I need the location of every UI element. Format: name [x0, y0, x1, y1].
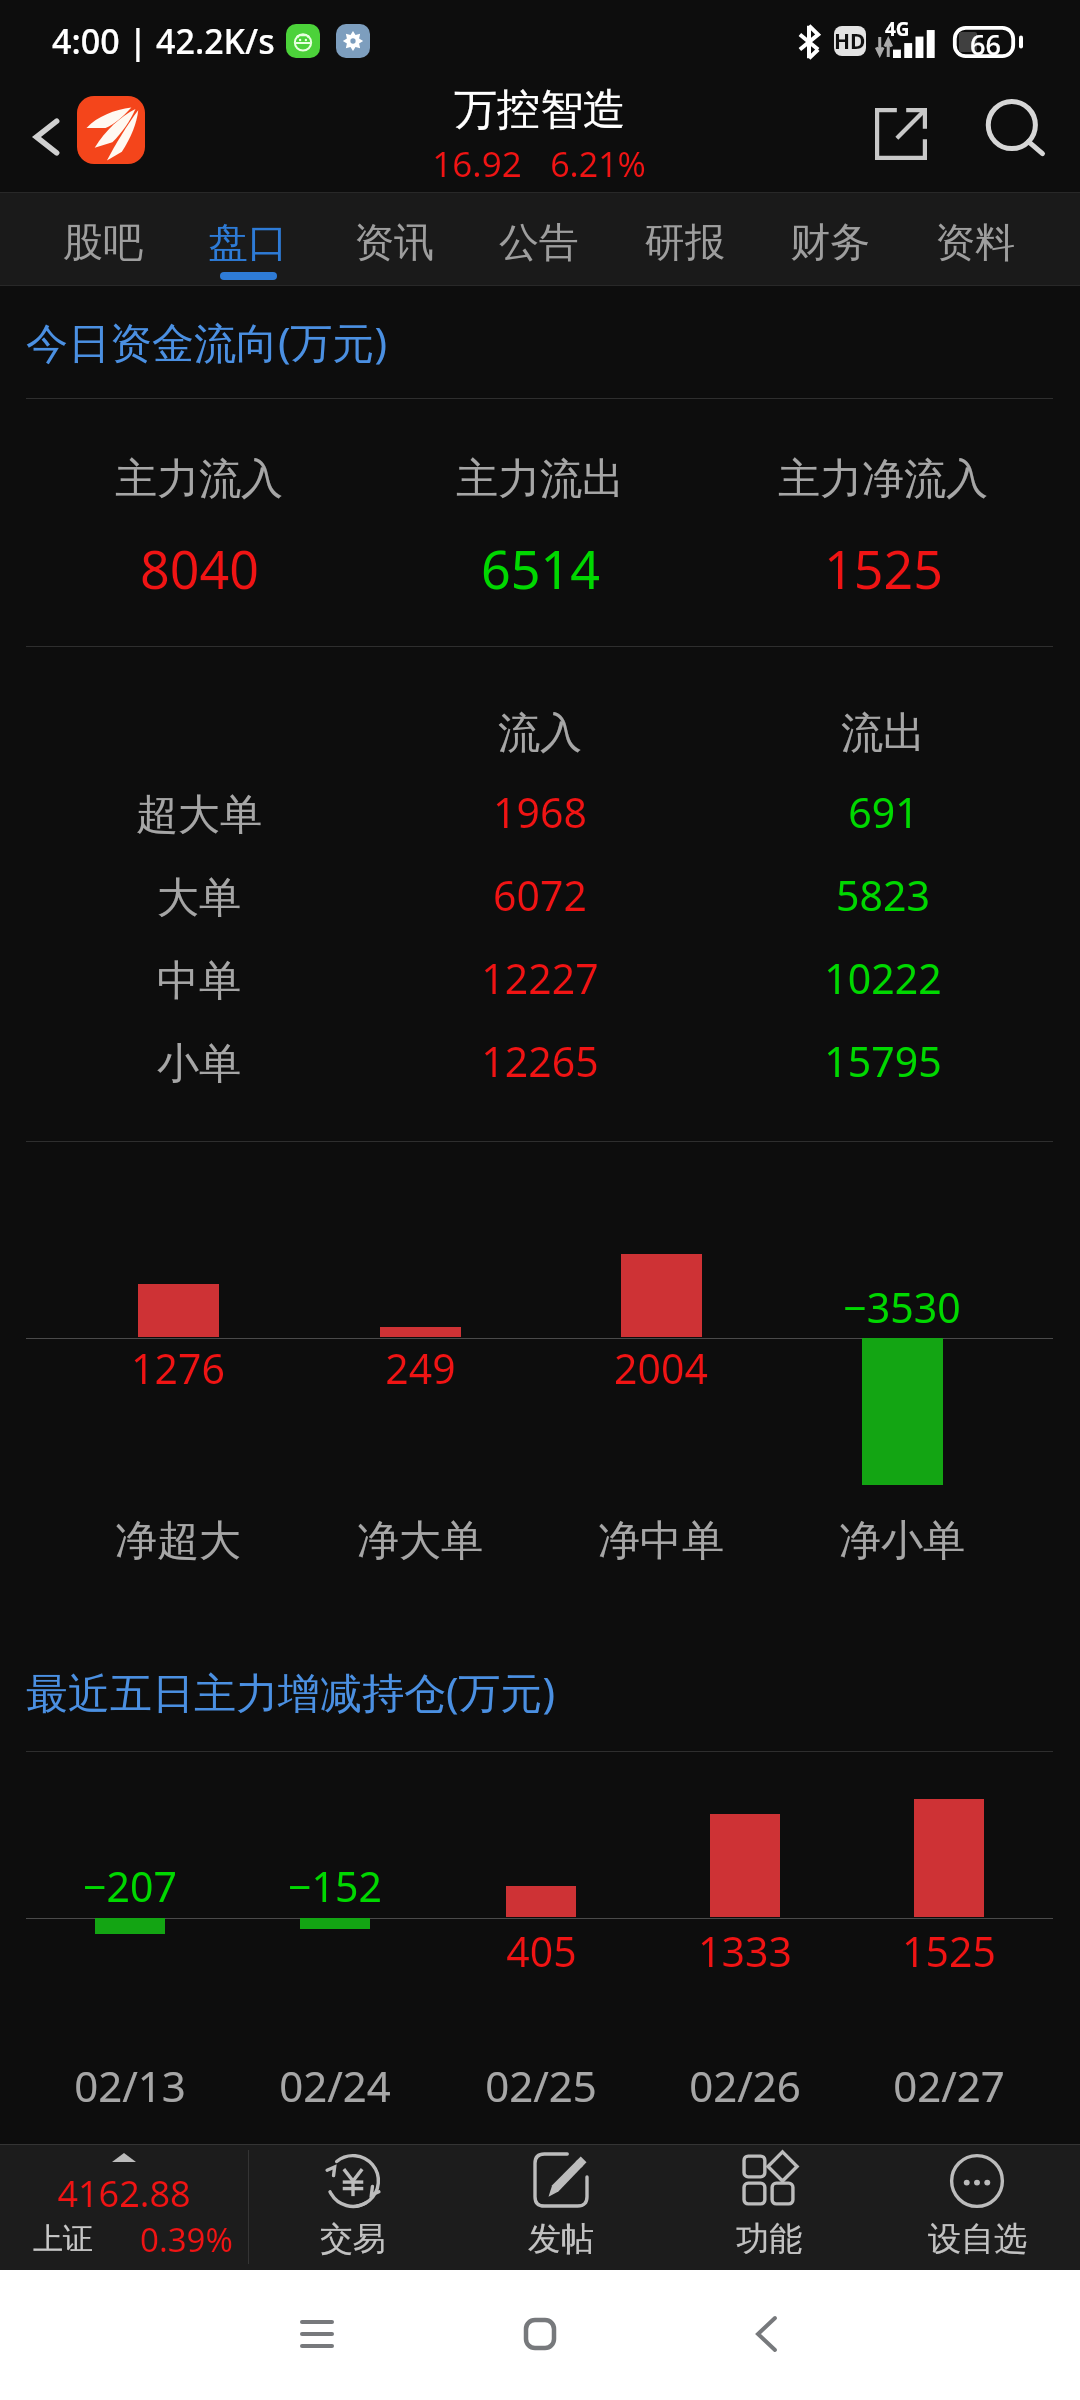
staticText: −3530	[843, 1279, 961, 1335]
staticText: 1525	[902, 1923, 996, 1979]
staticText: 66	[970, 26, 1001, 58]
staticText: 资讯	[354, 217, 434, 267]
staticText: 4162.88	[57, 2169, 191, 2218]
staticText: 流入	[498, 707, 582, 760]
staticText: 6072	[493, 867, 587, 923]
staticText: 中单	[157, 955, 241, 1008]
staticText: 2004	[614, 1340, 708, 1396]
staticText: 小单	[157, 1038, 241, 1091]
button[interactable]: 研报	[613, 192, 757, 286]
staticText: 今日资金流向(万元)	[26, 313, 388, 370]
staticText: 净小单	[839, 1515, 965, 1568]
staticText: 4:00 | 42.2K/s	[52, 18, 275, 64]
staticText: 大单	[157, 872, 241, 925]
staticText: 1276	[131, 1340, 225, 1396]
staticText: 02/27	[893, 2057, 1005, 2114]
button[interactable]: 设自选	[873, 2144, 1080, 2270]
staticText: 发帖	[528, 2218, 594, 2260]
button[interactable]: 4162.88	[0, 2144, 248, 2270]
staticText: 691	[848, 784, 919, 840]
staticText: 资料	[935, 217, 1015, 267]
button[interactable]: 发帖	[457, 2144, 665, 2270]
staticText: 1333	[698, 1923, 792, 1979]
staticText: 6514	[481, 533, 600, 604]
staticText: 万控智造	[454, 83, 626, 137]
staticText: 功能	[736, 2218, 802, 2260]
staticText: 4G	[885, 16, 910, 42]
button[interactable]: Home	[480, 2274, 600, 2394]
staticText: 财务	[790, 217, 870, 267]
staticText: −207	[83, 1858, 177, 1914]
staticText: 净中单	[598, 1515, 724, 1568]
staticText: 盘口	[208, 217, 288, 267]
staticText: 02/13	[74, 2057, 186, 2114]
button[interactable]: Back	[706, 2274, 826, 2394]
button[interactable]: 交易	[249, 2144, 457, 2270]
staticText: 02/24	[279, 2057, 391, 2114]
staticText: 净大单	[357, 1515, 483, 1568]
button[interactable]: Eastmoney	[77, 96, 145, 164]
staticText: 12265	[481, 1033, 599, 1089]
staticText: 5823	[836, 867, 930, 923]
staticText: 设自选	[928, 2218, 1027, 2260]
staticText: 02/25	[485, 2057, 597, 2114]
staticText: 405	[506, 1923, 577, 1979]
staticText: 主力净流入	[778, 453, 988, 506]
staticText: 超大单	[136, 789, 262, 842]
staticText: 公告	[499, 217, 579, 267]
staticText: 交易	[320, 2218, 386, 2260]
staticText: 流出	[841, 707, 925, 760]
button[interactable]: Recents	[257, 2274, 377, 2394]
staticText: 最近五日主力增减持仓(万元)	[26, 1663, 556, 1720]
staticText: 1525	[824, 533, 943, 604]
staticText: 10222	[824, 950, 942, 1006]
button[interactable]: 功能	[665, 2144, 873, 2270]
staticText: 02/26	[689, 2057, 801, 2114]
button[interactable]: Search	[970, 86, 1058, 174]
staticText: 16.92	[432, 140, 522, 188]
staticText: 12227	[481, 950, 599, 1006]
staticText: 上证	[33, 2220, 93, 2258]
staticText: 8040	[140, 533, 259, 604]
button[interactable]: 财务	[758, 192, 902, 286]
staticText: 6.21%	[550, 141, 646, 187]
staticText: 15795	[824, 1033, 942, 1089]
button[interactable]: 股吧	[31, 192, 175, 286]
staticText: 净超大	[115, 1515, 241, 1568]
button[interactable]: 盘口	[176, 192, 320, 286]
button[interactable]: 公告	[467, 192, 611, 286]
staticText: 主力流入	[115, 453, 283, 506]
staticText: 1968	[493, 784, 587, 840]
staticText: 0.39%	[140, 2217, 233, 2262]
staticText: 股吧	[63, 217, 143, 267]
staticText: 249	[385, 1340, 456, 1396]
staticText: HD	[834, 27, 866, 56]
button[interactable]: 资料	[903, 192, 1047, 286]
staticText: 研报	[645, 217, 725, 267]
button[interactable]: Share	[857, 90, 945, 178]
staticText: −152	[288, 1858, 382, 1914]
button[interactable]: 资讯	[322, 192, 466, 286]
button[interactable]: Back	[12, 102, 82, 172]
staticText: 主力流出	[456, 453, 624, 506]
